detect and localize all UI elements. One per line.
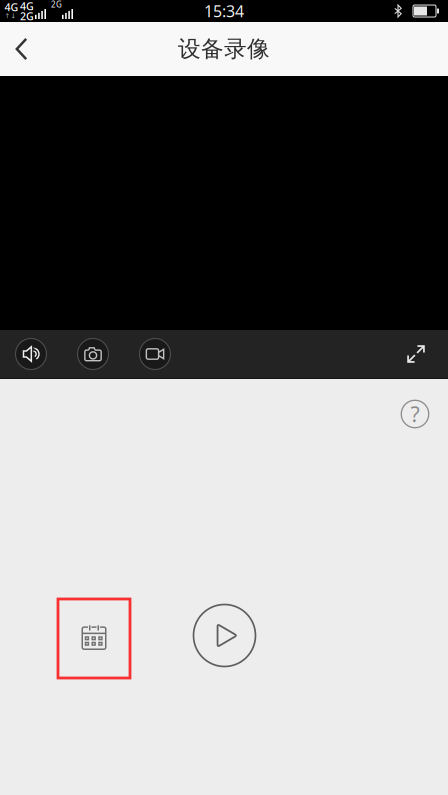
staticText: 2G <box>51 0 62 10</box>
button[interactable]: Choose date <box>58 599 130 678</box>
staticText: ? <box>410 400 419 428</box>
staticText: 设备录像 <box>178 35 270 63</box>
staticText: ↑↓ <box>4 12 16 20</box>
button[interactable]: Record <box>124 329 186 378</box>
button[interactable]: Back <box>0 22 45 76</box>
button[interactable]: Help <box>392 391 438 437</box>
staticText: 4G <box>20 0 34 13</box>
staticText: 2G <box>20 9 34 23</box>
staticText: 15:34 <box>204 0 244 22</box>
button[interactable]: Snapshot <box>62 329 124 378</box>
button[interactable]: Play <box>185 599 264 678</box>
button[interactable]: Full screen <box>400 345 448 363</box>
button[interactable]: Volume <box>0 329 62 378</box>
staticText: 4G <box>4 0 18 14</box>
